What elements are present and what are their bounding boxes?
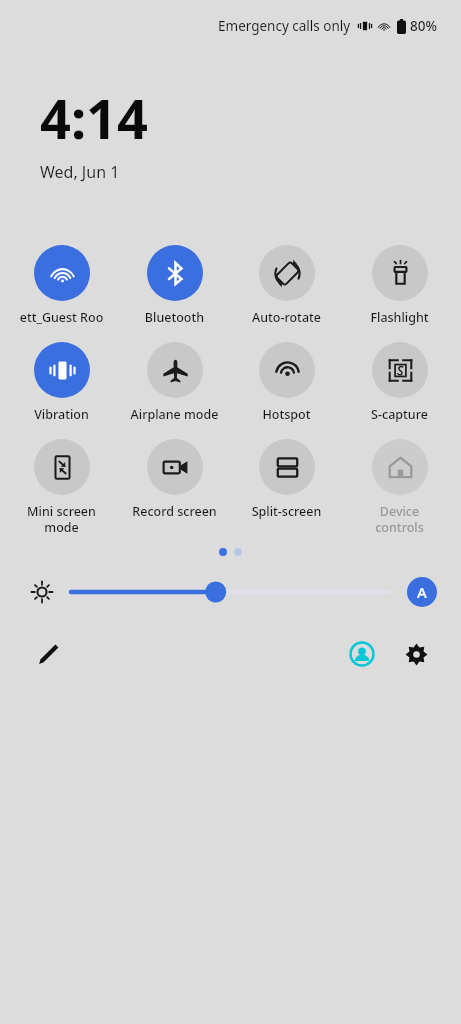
- button[interactable]: Split-screen: [235, 435, 338, 520]
- staticText: Hotspot: [235, 406, 338, 423]
- staticText: Bluetooth: [123, 309, 226, 326]
- staticText: Auto-rotate: [235, 309, 338, 326]
- staticText: S-capture: [348, 406, 451, 423]
- button[interactable]: Auto brightness: [407, 577, 437, 607]
- staticText: Vibration: [10, 406, 113, 423]
- button[interactable]: Bluetooth: [123, 241, 226, 326]
- button[interactable]: Airplane mode: [123, 338, 226, 423]
- staticText: Emergency calls only: [218, 17, 351, 35]
- button[interactable]: Edit: [32, 637, 66, 671]
- button[interactable]: User: [345, 637, 379, 671]
- button[interactable]: Vibration: [10, 338, 113, 423]
- button[interactable]: Hotspot: [235, 338, 338, 423]
- button[interactable]: Settings: [399, 637, 433, 671]
- staticText: Flashlight: [348, 309, 451, 326]
- staticText: Device controls: [348, 503, 451, 536]
- staticText: Record screen: [123, 503, 226, 520]
- button[interactable]: S-capture: [348, 338, 451, 423]
- button[interactable]: Auto-rotate: [235, 241, 338, 326]
- button[interactable]: Flashlight: [348, 241, 451, 326]
- staticText: Airplane mode: [123, 406, 226, 423]
- staticText: Split-screen: [235, 503, 338, 520]
- staticText: ett_Guest Roo: [10, 309, 113, 326]
- staticText: A: [417, 582, 427, 602]
- button[interactable]: ett_Guest Roo: [10, 241, 113, 326]
- staticText: 4:14: [40, 81, 148, 155]
- staticText: 80%: [410, 17, 437, 35]
- button[interactable]: Brightness slider: [71, 574, 389, 610]
- staticText: Mini screen mode: [10, 503, 113, 536]
- staticText: Wed, Jun 1: [40, 161, 120, 183]
- button[interactable]: Mini screen mode: [10, 435, 113, 536]
- button[interactable]: Record screen: [123, 435, 226, 520]
- button[interactable]: Device controls: [348, 435, 451, 536]
